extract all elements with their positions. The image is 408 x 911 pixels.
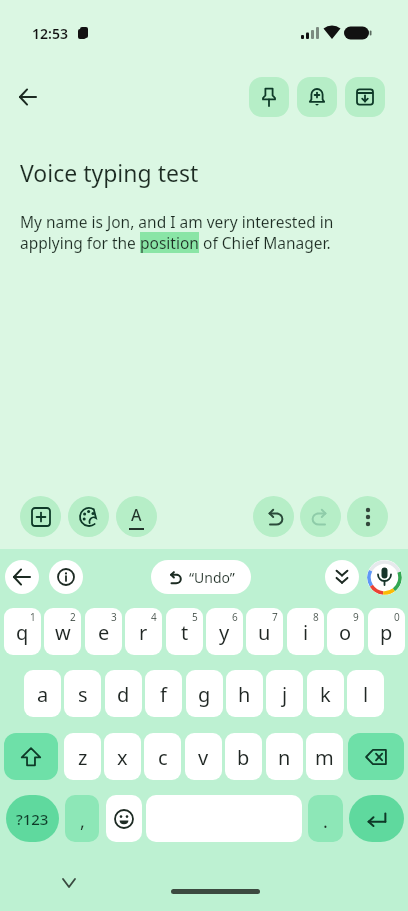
staticText: l [363, 681, 369, 708]
staticText: r [139, 619, 148, 646]
staticText: . [323, 809, 328, 834]
staticText: m [315, 744, 334, 771]
button[interactable] [349, 795, 404, 842]
staticText: x [117, 744, 128, 771]
button[interactable] [347, 496, 388, 537]
button[interactable]: f [145, 670, 182, 717]
button[interactable]: z [64, 733, 101, 780]
button[interactable]: ?123 [6, 795, 59, 842]
staticText: of Chief Manager. [199, 232, 331, 253]
button[interactable] [297, 77, 337, 117]
staticText: z [78, 744, 88, 771]
button[interactable] [68, 496, 109, 537]
button[interactable] [49, 560, 83, 594]
button[interactable] [300, 496, 341, 537]
button[interactable]: r [125, 608, 162, 655]
staticText: s [78, 681, 88, 708]
button[interactable] [249, 77, 289, 117]
button[interactable] [56, 871, 82, 895]
button[interactable]: p [368, 608, 405, 655]
staticText: 12:53 [32, 24, 68, 43]
button[interactable]: k [307, 670, 344, 717]
staticText: 9 [353, 610, 359, 624]
button[interactable] [146, 795, 302, 842]
staticText: 7 [272, 610, 278, 624]
button[interactable] [345, 77, 385, 117]
staticText: e [98, 619, 110, 646]
button[interactable]: q [4, 608, 41, 655]
button[interactable] [4, 733, 58, 780]
button[interactable]: t [166, 608, 203, 655]
staticText: 2 [70, 610, 76, 624]
button[interactable]: . [308, 795, 343, 842]
staticText: d [117, 681, 130, 708]
button[interactable]: y [206, 608, 243, 655]
button[interactable]: g [186, 670, 223, 717]
staticText: k [320, 681, 331, 708]
staticText: 6 [232, 610, 238, 624]
staticText: A [131, 504, 142, 526]
button[interactable]: m [306, 733, 343, 780]
button[interactable]: j [266, 670, 303, 717]
staticText: j [282, 681, 288, 708]
staticText: 3 [111, 610, 117, 624]
staticText: My name is Jon, and I am very interested… [20, 211, 334, 232]
staticText: u [258, 619, 271, 646]
button[interactable]: , [65, 795, 99, 842]
button[interactable]: c [144, 733, 181, 780]
button[interactable]: s [64, 670, 101, 717]
button[interactable]: n [266, 733, 303, 780]
staticText: , [80, 809, 85, 834]
staticText: applying for the [20, 232, 140, 253]
staticText: 1 [30, 610, 36, 624]
staticText: h [238, 681, 251, 708]
staticText: 0 [394, 610, 400, 624]
button[interactable] [12, 81, 44, 113]
button[interactable]: e [85, 608, 122, 655]
button[interactable]: a [24, 670, 61, 717]
staticText: w [55, 619, 71, 646]
staticText: position [140, 232, 199, 253]
button[interactable]: u [246, 608, 283, 655]
staticText: g [198, 681, 211, 708]
button[interactable]: h [226, 670, 263, 717]
staticText: “Undo” [189, 568, 235, 587]
button[interactable] [20, 496, 61, 537]
button[interactable] [325, 560, 359, 594]
button[interactable]: o [327, 608, 364, 655]
staticText: a [37, 681, 49, 708]
button[interactable] [5, 560, 39, 594]
button[interactable]: b [225, 733, 262, 780]
staticText: b [237, 744, 250, 771]
staticText: p [380, 619, 393, 646]
staticText: Voice typing test [20, 157, 199, 188]
staticText: f [160, 681, 167, 708]
staticText: ?123 [16, 809, 49, 829]
button[interactable]: v [185, 733, 222, 780]
staticText: c [158, 744, 168, 771]
button[interactable] [348, 733, 404, 780]
button[interactable]: l [347, 670, 384, 717]
staticText: t [181, 619, 189, 646]
staticText: i [303, 619, 309, 646]
button[interactable]: w [44, 608, 81, 655]
staticText: q [16, 619, 29, 646]
button[interactable]: “Undo” [151, 560, 251, 594]
button[interactable] [253, 496, 294, 537]
staticText: o [339, 619, 352, 646]
button[interactable]: A [116, 496, 157, 537]
staticText: 5 [192, 610, 198, 624]
button[interactable] [367, 560, 402, 595]
button[interactable] [106, 795, 142, 842]
staticText: 4 [151, 610, 157, 624]
staticText: v [198, 744, 209, 771]
staticText: y [219, 619, 230, 646]
staticText: n [278, 744, 291, 771]
button[interactable]: x [104, 733, 141, 780]
button[interactable]: i [287, 608, 324, 655]
button[interactable]: d [105, 670, 142, 717]
staticText: 8 [313, 610, 319, 624]
